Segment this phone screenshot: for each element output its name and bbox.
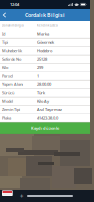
staticText: Kaydı düzenle bbox=[31, 125, 59, 131]
button[interactable]: Plaka bbox=[0, 114, 90, 122]
staticText: Türk bbox=[37, 90, 45, 95]
button[interactable]: Kilo bbox=[0, 64, 90, 72]
staticText: Donanım Bilgisi bbox=[2, 24, 24, 27]
staticText: Kilo Ay bbox=[37, 98, 49, 104]
staticText: ✛ bbox=[20, 194, 23, 198]
staticText: Gövernek bbox=[37, 40, 54, 45]
button[interactable]: Sürücü bbox=[0, 89, 90, 97]
button[interactable]: Yapım Alanı bbox=[0, 80, 90, 89]
staticText: Kendilik Listesi bbox=[37, 24, 58, 27]
staticText: Muhaberlik bbox=[2, 48, 22, 53]
staticText: Zemin Tipi bbox=[2, 107, 20, 112]
staticText: Yapım Alanı bbox=[2, 82, 23, 87]
staticText: 12:04 bbox=[10, 2, 19, 7]
staticText: Tipi bbox=[2, 40, 8, 45]
button[interactable]: Id bbox=[0, 30, 90, 38]
staticText: 25128 bbox=[37, 56, 47, 62]
staticText: Model bbox=[2, 98, 13, 104]
staticText: 28.00.00 bbox=[37, 82, 51, 87]
staticText: Kilo bbox=[2, 65, 8, 70]
staticText: Sürücü bbox=[2, 90, 14, 95]
button[interactable]: Parsel bbox=[0, 72, 90, 80]
button[interactable]: Recenter bbox=[19, 193, 24, 198]
staticText: 1 bbox=[37, 73, 39, 78]
staticText: Plaka bbox=[2, 115, 11, 120]
button[interactable]: Model bbox=[0, 97, 90, 106]
staticText: Seferde No bbox=[2, 56, 21, 62]
staticText: Parsel bbox=[2, 73, 13, 78]
button[interactable]: Seferde No bbox=[0, 55, 90, 64]
staticText: 41423-38.0.0 bbox=[37, 115, 58, 120]
staticText: Id bbox=[2, 31, 5, 36]
staticText: Marka bbox=[37, 31, 49, 36]
button[interactable]: Back bbox=[0, 9, 9, 21]
button[interactable]: Muhaberlik bbox=[0, 47, 90, 55]
staticText: Asıl Taşırmaz bbox=[37, 107, 62, 112]
staticText: Hodabro bbox=[37, 48, 52, 53]
button[interactable]: Tipi bbox=[0, 38, 90, 47]
staticText: 299 bbox=[37, 65, 43, 70]
staticText: Cordalık Bilgisi bbox=[25, 11, 65, 19]
button[interactable]: Zemin Tipi bbox=[0, 106, 90, 114]
button[interactable]: Kaydı düzenle bbox=[0, 122, 90, 134]
